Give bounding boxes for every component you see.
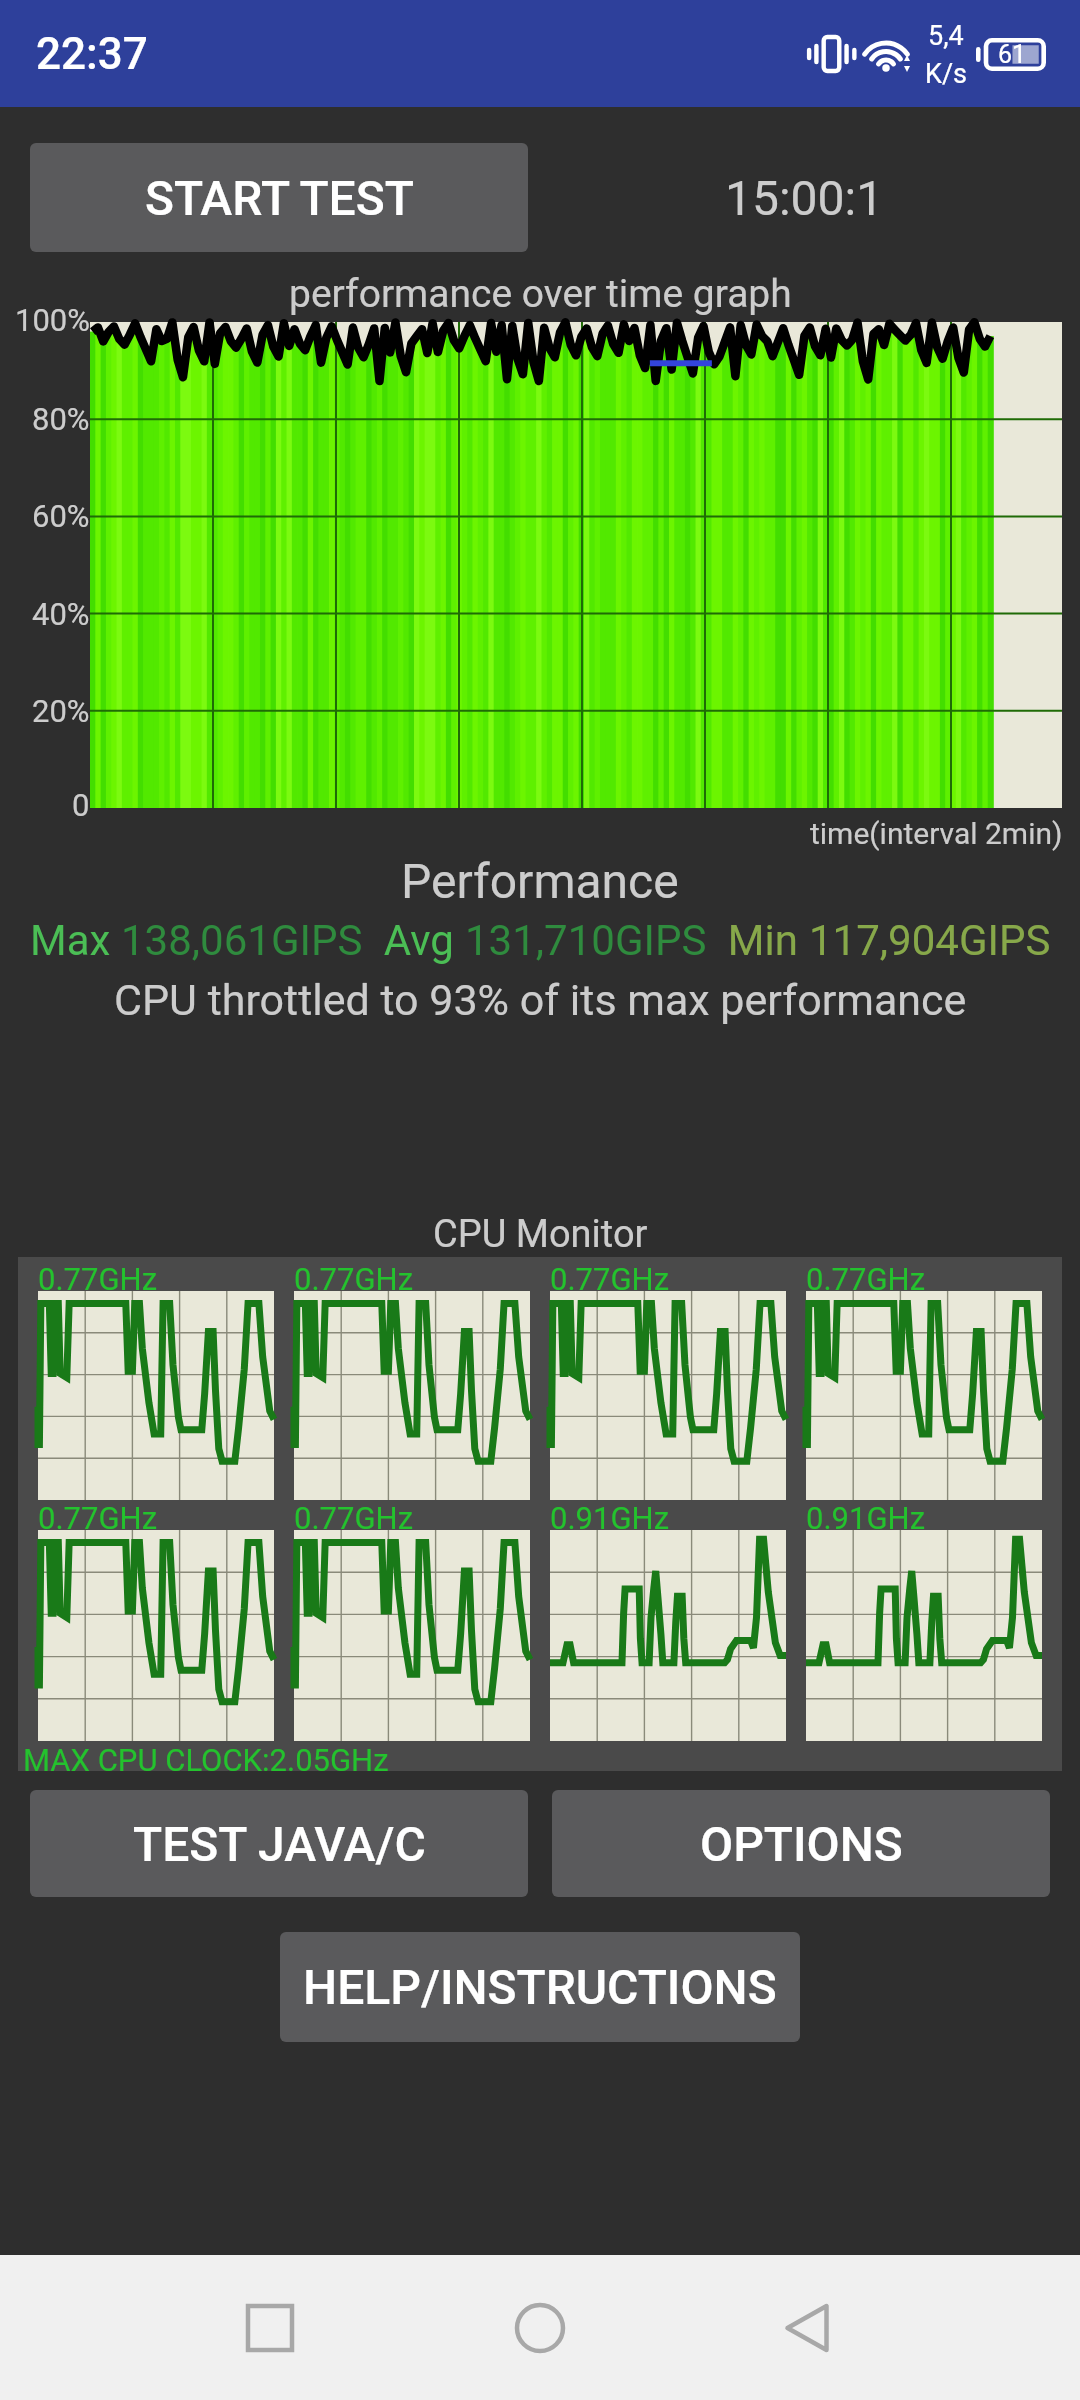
button[interactable]: OPTIONS xyxy=(552,1790,1050,1897)
staticText: Avg xyxy=(363,916,465,965)
button[interactable]: HELP/INSTRUCTIONS xyxy=(280,1932,800,2042)
staticText: 5,4 xyxy=(928,20,964,52)
staticText: 100% xyxy=(15,302,90,338)
staticText: 20% xyxy=(32,693,90,729)
staticText: performance over time graph xyxy=(289,271,792,317)
staticText: 0.77GHz xyxy=(806,1261,926,1297)
staticText: 60% xyxy=(32,498,90,534)
staticText: CPU throttled to 93% of its max performa… xyxy=(114,975,967,1025)
staticText: 40% xyxy=(32,596,90,632)
button[interactable]: Home xyxy=(470,2255,610,2400)
staticText: 0 xyxy=(72,787,90,823)
staticText: time(interval 2min) xyxy=(810,816,1063,851)
staticText: 0.77GHz xyxy=(38,1500,158,1536)
staticText: START TEST xyxy=(145,170,414,226)
staticText: 0.91GHz xyxy=(550,1500,670,1536)
button[interactable]: Recents xyxy=(200,2255,340,2400)
staticText: HELP/INSTRUCTIONS xyxy=(303,1959,777,2015)
staticText: Min xyxy=(707,916,809,965)
staticText: TEST JAVA/C xyxy=(133,1816,426,1872)
staticText: 0.77GHz xyxy=(294,1261,414,1297)
staticText: 0.91GHz xyxy=(806,1500,926,1536)
staticText: Max xyxy=(30,916,121,965)
staticText: 0.77GHz xyxy=(294,1500,414,1536)
staticText: CPU Monitor xyxy=(433,1212,648,1257)
button[interactable]: TEST JAVA/C xyxy=(30,1790,528,1897)
staticText: 22:37 xyxy=(36,28,148,80)
button[interactable]: START TEST xyxy=(30,143,528,252)
staticText: MAX CPU CLOCK:2.05GHz xyxy=(23,1742,389,1776)
staticText: 131,710GIPS xyxy=(465,916,707,965)
staticText: 138,061GIPS xyxy=(121,916,363,965)
staticText: OPTIONS xyxy=(700,1816,903,1872)
staticText: 117,904GIPS xyxy=(809,916,1051,965)
staticText: K/s xyxy=(925,58,968,90)
staticText: 61 xyxy=(998,40,1027,69)
staticText: 15:00:1 xyxy=(725,170,884,226)
button[interactable]: Back xyxy=(740,2255,880,2400)
staticText: 0.77GHz xyxy=(550,1261,670,1297)
staticText: Performance xyxy=(401,853,679,903)
staticText: 80% xyxy=(32,401,90,437)
staticText: 0.77GHz xyxy=(38,1261,158,1297)
